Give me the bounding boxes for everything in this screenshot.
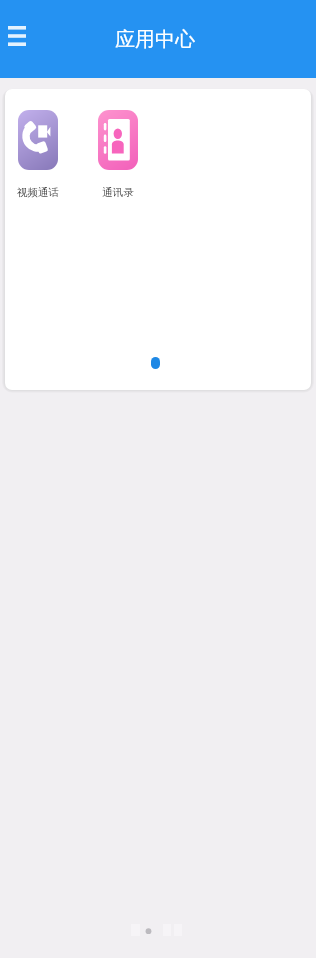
staticText: 通讯录 <box>102 186 134 199</box>
staticText: 视频通话 <box>17 186 59 199</box>
button[interactable]: 视频通话 <box>5 110 73 199</box>
button[interactable]: 通讯录 <box>73 110 163 199</box>
button[interactable]: Page 1 <box>151 357 160 369</box>
button[interactable]: Open navigation menu <box>0 19 34 53</box>
staticText: 应用中心 <box>115 27 195 52</box>
